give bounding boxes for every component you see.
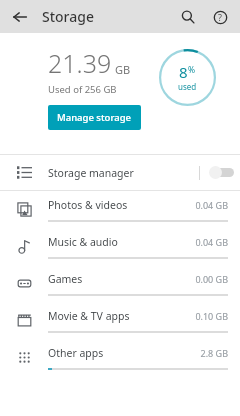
button[interactable]: Photos & videos <box>0 191 240 228</box>
button[interactable]: Back <box>6 3 34 31</box>
button[interactable]: Movie & TV apps <box>0 302 240 339</box>
staticText: ? <box>218 11 222 23</box>
staticText: 21.39 <box>48 46 112 80</box>
staticText: % <box>188 64 196 76</box>
staticText: 0.04 GB <box>195 236 228 248</box>
button[interactable]: Other apps <box>0 339 240 376</box>
staticText: 0.10 GB <box>195 310 228 322</box>
staticText: Games <box>48 272 195 286</box>
staticText: used <box>178 81 197 92</box>
staticText: Storage manager <box>48 166 199 180</box>
staticText: 2.8 GB <box>200 347 228 359</box>
button[interactable]: Help <box>206 3 234 31</box>
button[interactable]: Music & audio <box>0 228 240 265</box>
button[interactable]: Storage manager toggle <box>209 166 231 179</box>
staticText: Photos & videos <box>48 198 195 212</box>
staticText: Storage <box>42 7 94 26</box>
staticText: 8 <box>179 62 188 82</box>
button[interactable]: Storage manager <box>0 155 240 190</box>
button[interactable]: Search <box>174 3 202 31</box>
staticText: GB <box>115 62 131 77</box>
staticText: 0.00 GB <box>195 273 228 285</box>
staticText: Music & audio <box>48 235 195 249</box>
button[interactable]: Manage storage <box>48 105 141 130</box>
button[interactable]: Games <box>0 265 240 302</box>
staticText: 0.04 GB <box>195 199 228 211</box>
staticText: Manage storage <box>57 111 132 124</box>
staticText: Movie & TV apps <box>48 309 195 323</box>
staticText: Other apps <box>48 346 200 360</box>
staticText: Used of 256 GB <box>48 83 117 96</box>
